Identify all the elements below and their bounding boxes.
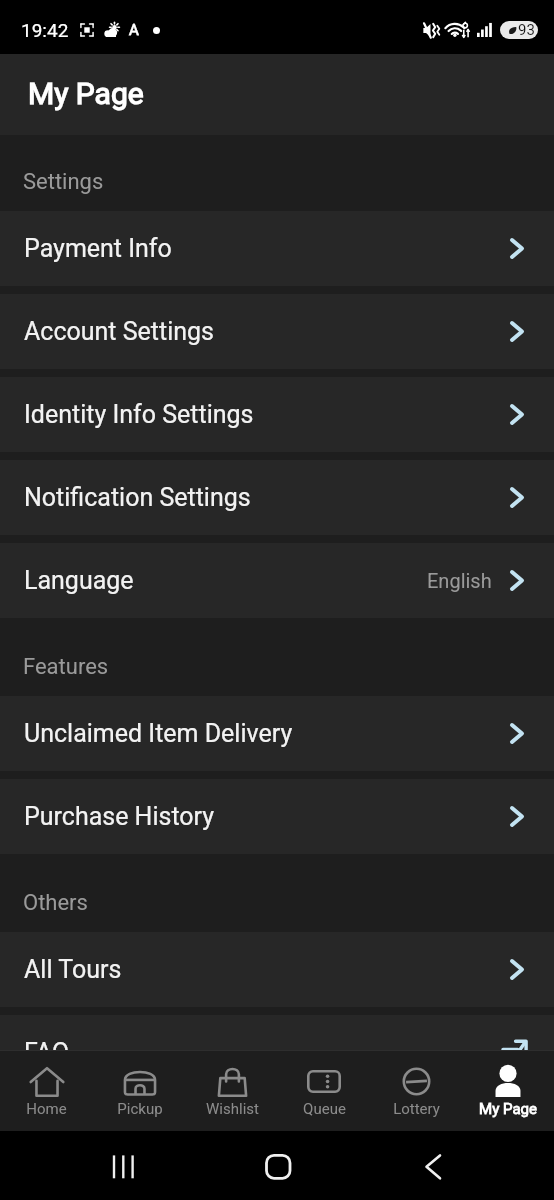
staticText: Account Settings bbox=[24, 317, 214, 346]
other: System navigation bbox=[0, 1131, 554, 1200]
button[interactable]: Language bbox=[0, 543, 554, 618]
button[interactable]: Pickup bbox=[93, 1065, 186, 1118]
staticText: 19:42 bbox=[21, 19, 69, 41]
staticText: Home bbox=[26, 1100, 67, 1118]
staticText: Features bbox=[23, 654, 109, 680]
staticText: Payment Info bbox=[24, 234, 172, 263]
staticText: Notification Settings bbox=[24, 483, 251, 512]
staticText: Wishlist bbox=[206, 1100, 259, 1118]
button[interactable]: Identity Info Settings bbox=[0, 377, 554, 452]
button[interactable]: Account Settings bbox=[0, 294, 554, 369]
staticText: Identity Info Settings bbox=[24, 400, 254, 429]
button[interactable]: My Page bbox=[462, 1065, 554, 1118]
staticText: 93 bbox=[518, 21, 535, 39]
staticText: English bbox=[427, 569, 492, 592]
button[interactable]: All Tours bbox=[0, 932, 554, 1007]
staticText: Queue bbox=[303, 1100, 346, 1118]
staticText: Purchase History bbox=[24, 802, 215, 831]
staticText: Lottery bbox=[393, 1100, 440, 1118]
button[interactable]: Lottery bbox=[370, 1065, 462, 1118]
button[interactable]: Queue bbox=[278, 1065, 370, 1118]
button[interactable]: Purchase History bbox=[0, 779, 554, 854]
button[interactable]: Wishlist bbox=[186, 1065, 278, 1118]
staticText: A bbox=[129, 21, 139, 39]
staticText: Pickup bbox=[117, 1100, 163, 1118]
button[interactable]: Payment Info bbox=[0, 211, 554, 286]
staticText: My Page bbox=[479, 1100, 537, 1118]
staticText: Language bbox=[24, 566, 134, 595]
button[interactable]: FAQ bbox=[0, 1015, 554, 1090]
staticText: Settings bbox=[23, 169, 104, 195]
staticText: My Page bbox=[28, 76, 144, 111]
staticText: Unclaimed Item Delivery bbox=[24, 719, 293, 748]
staticText: FAQ bbox=[24, 1038, 70, 1067]
button[interactable]: Notification Settings bbox=[0, 460, 554, 535]
button[interactable]: Home bbox=[0, 1065, 93, 1118]
button[interactable]: Unclaimed Item Delivery bbox=[0, 696, 554, 771]
staticText: Others bbox=[23, 890, 88, 916]
staticText: All Tours bbox=[24, 955, 122, 984]
